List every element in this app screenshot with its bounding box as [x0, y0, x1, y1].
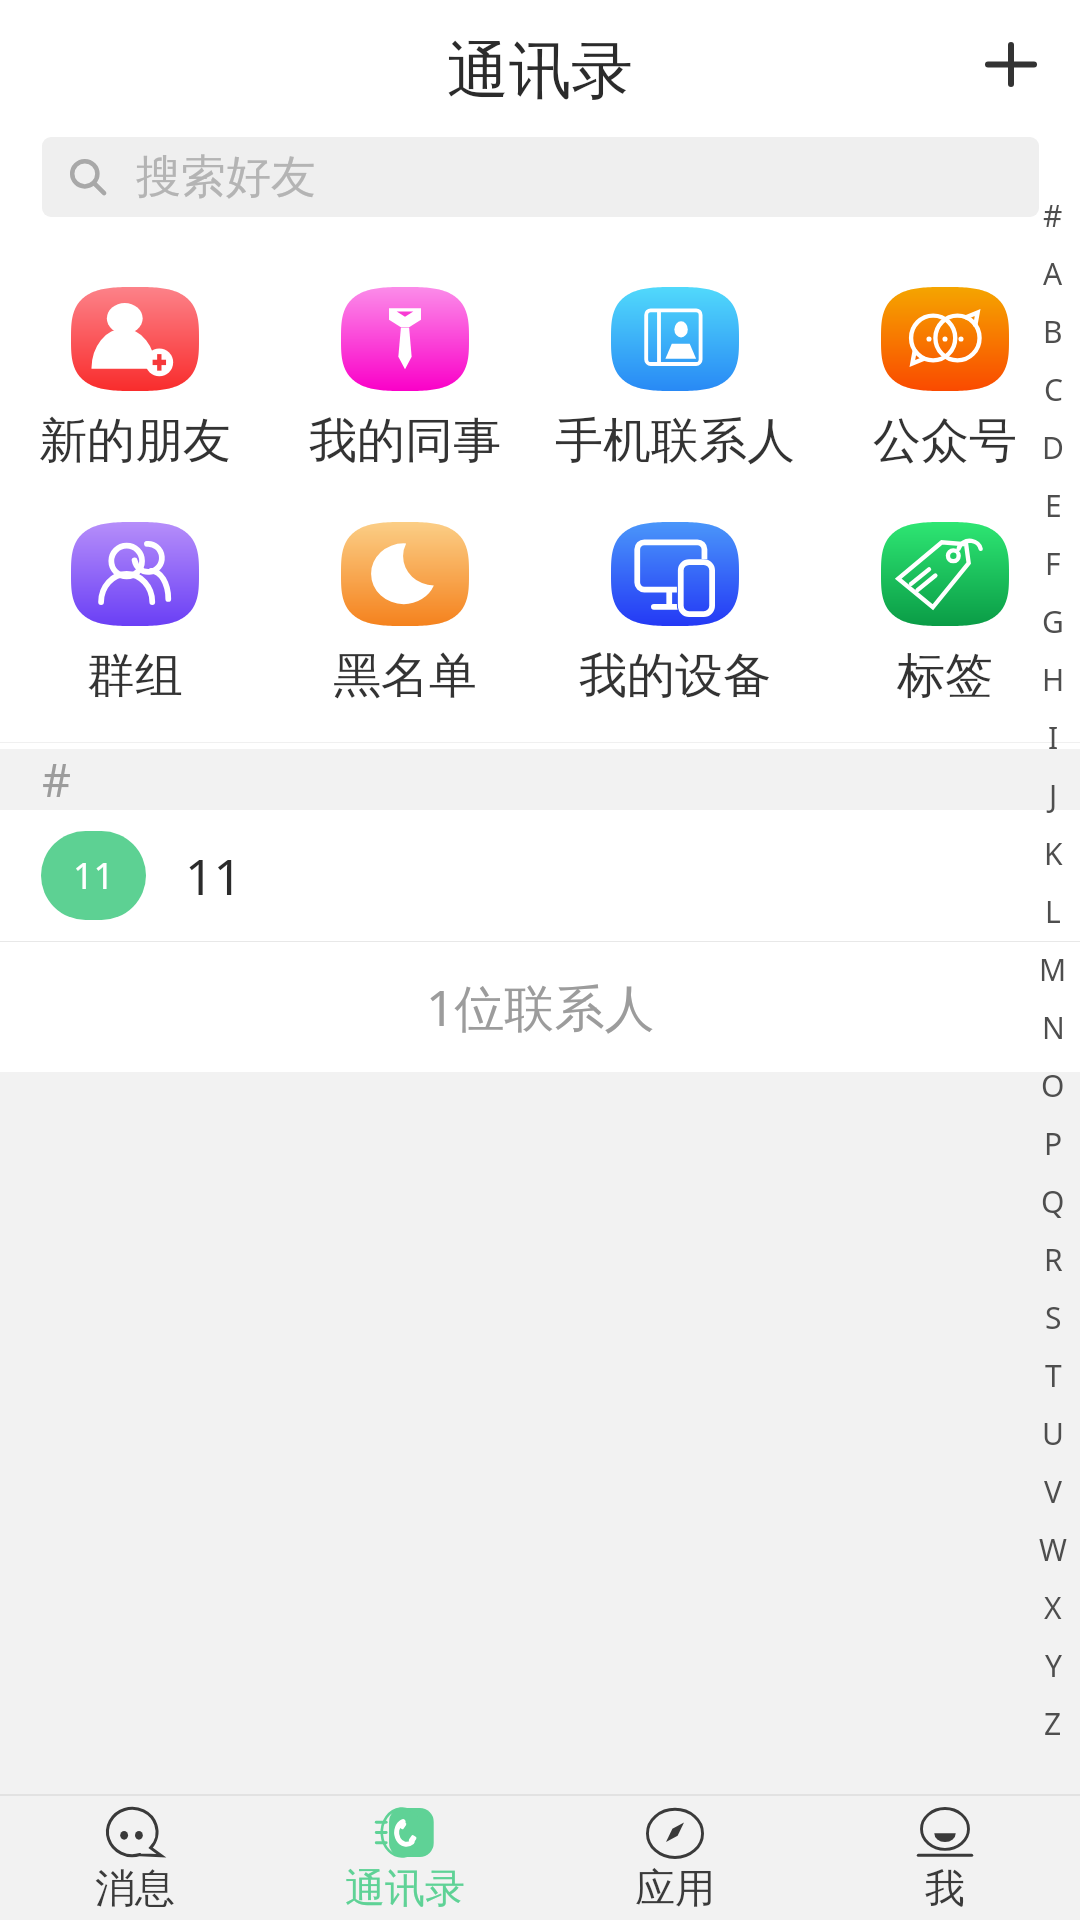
staticText: X — [1044, 1587, 1062, 1628]
staticText: 群组 — [87, 646, 183, 706]
button[interactable]: Q — [1031, 1172, 1075, 1230]
button[interactable]: 标签 — [810, 522, 1080, 706]
button[interactable]: V — [1031, 1462, 1075, 1520]
button[interactable]: F — [1031, 534, 1075, 592]
button[interactable]: # — [1031, 186, 1075, 244]
button[interactable]: O — [1031, 1056, 1075, 1114]
staticText: 手机联系人 — [555, 411, 795, 471]
staticText: D — [1042, 427, 1064, 468]
staticText: 通讯录 — [345, 1863, 465, 1913]
staticText: # — [42, 749, 72, 810]
button[interactable]: 通讯录 — [270, 1796, 540, 1920]
staticText: 11 — [73, 851, 115, 900]
button[interactable]: U — [1031, 1404, 1075, 1462]
button[interactable]: 我 — [810, 1796, 1080, 1920]
button[interactable]: Add — [957, 10, 1065, 118]
button[interactable]: P — [1031, 1114, 1075, 1172]
staticText: 我 — [925, 1863, 965, 1913]
button[interactable]: 消息 — [0, 1796, 270, 1920]
staticText: 1位联系人 — [426, 973, 655, 1041]
button[interactable]: C — [1031, 360, 1075, 418]
staticText: 11 — [185, 842, 243, 910]
staticText: M — [1039, 949, 1067, 990]
button[interactable]: H — [1031, 650, 1075, 708]
staticText: Z — [1044, 1703, 1062, 1744]
staticText: 新的朋友 — [39, 411, 231, 471]
button[interactable]: X — [1031, 1578, 1075, 1636]
staticText: B — [1043, 311, 1063, 352]
button[interactable]: 我的同事 — [270, 287, 540, 471]
staticText: L — [1045, 891, 1061, 932]
staticText: A — [1043, 253, 1063, 294]
staticText: 标签 — [897, 646, 993, 706]
staticText: I — [1048, 717, 1059, 758]
button[interactable]: 新的朋友 — [0, 287, 270, 471]
button[interactable]: 搜索好友 — [42, 137, 1039, 217]
staticText: N — [1042, 1007, 1065, 1048]
button[interactable]: T — [1031, 1346, 1075, 1404]
staticText: O — [1041, 1065, 1065, 1106]
button[interactable]: I — [1031, 708, 1075, 766]
button[interactable]: G — [1031, 592, 1075, 650]
staticText: H — [1042, 659, 1065, 700]
button[interactable]: E — [1031, 476, 1075, 534]
staticText: C — [1044, 369, 1063, 410]
staticText: S — [1045, 1297, 1062, 1338]
button[interactable]: 应用 — [540, 1796, 810, 1920]
button[interactable]: 公众号 — [810, 287, 1080, 471]
staticText: J — [1049, 775, 1058, 816]
button[interactable]: A — [1031, 244, 1075, 302]
staticText: Y — [1045, 1645, 1062, 1686]
staticText: 公众号 — [873, 411, 1017, 471]
button[interactable]: 手机联系人 — [540, 287, 810, 471]
button[interactable]: N — [1031, 998, 1075, 1056]
button[interactable]: L — [1031, 882, 1075, 940]
button[interactable]: W — [1031, 1520, 1075, 1578]
staticText: G — [1042, 601, 1064, 642]
staticText: E — [1045, 485, 1062, 526]
staticText: 搜索好友 — [136, 149, 316, 206]
staticText: 我的设备 — [579, 646, 771, 706]
button[interactable]: 黑名单 — [270, 522, 540, 706]
button[interactable]: 群组 — [0, 522, 270, 706]
staticText: 消息 — [95, 1863, 175, 1913]
staticText: 我的同事 — [309, 411, 501, 471]
staticText: T — [1045, 1355, 1062, 1396]
staticText: 黑名单 — [333, 646, 477, 706]
button[interactable]: M — [1031, 940, 1075, 998]
button[interactable]: J — [1031, 766, 1075, 824]
staticText: R — [1044, 1239, 1063, 1280]
staticText: Q — [1041, 1181, 1065, 1222]
staticText: K — [1044, 833, 1063, 874]
staticText: P — [1044, 1123, 1063, 1164]
button[interactable]: D — [1031, 418, 1075, 476]
button[interactable]: R — [1031, 1230, 1075, 1288]
staticText: 通讯录 — [447, 32, 633, 110]
staticText: # — [1043, 195, 1063, 236]
button[interactable]: 11 — [0, 810, 1080, 941]
button[interactable]: Y — [1031, 1636, 1075, 1694]
staticText: V — [1044, 1471, 1062, 1512]
staticText: 应用 — [635, 1863, 715, 1913]
button[interactable]: Z — [1031, 1694, 1075, 1752]
staticText: F — [1045, 543, 1061, 584]
button[interactable]: 我的设备 — [540, 522, 810, 706]
button[interactable]: K — [1031, 824, 1075, 882]
staticText: W — [1039, 1529, 1067, 1570]
button[interactable]: S — [1031, 1288, 1075, 1346]
staticText: U — [1042, 1413, 1064, 1454]
button[interactable]: B — [1031, 302, 1075, 360]
